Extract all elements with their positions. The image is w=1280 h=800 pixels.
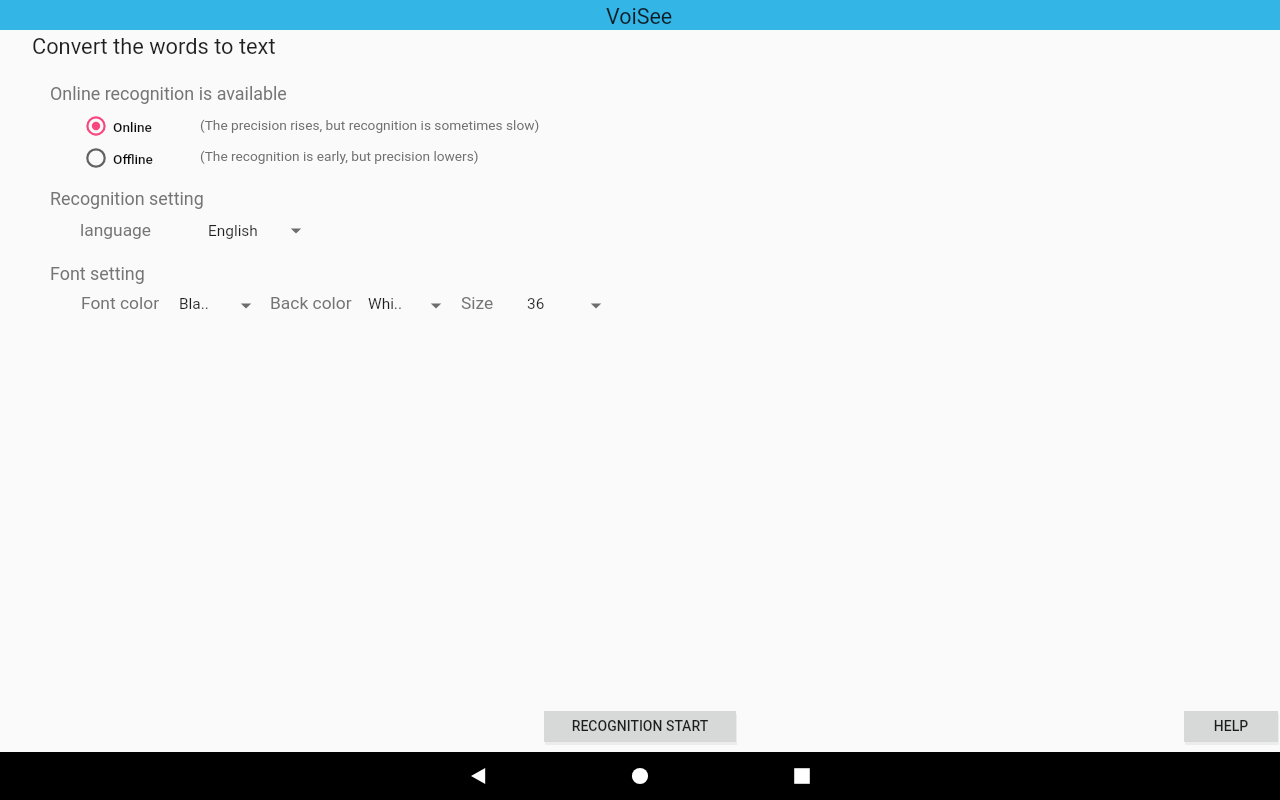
button[interactable]: Online [83,113,155,139]
staticText: Bla.. [179,295,209,313]
staticText: Offline [113,151,153,167]
staticText: 36 [527,295,545,313]
button[interactable]: Back [454,752,502,800]
staticText: Convert the words to text [32,34,276,60]
staticText: VoiSee [606,4,673,29]
button[interactable]: Select language [201,213,309,249]
staticText: Font color [81,293,160,313]
staticText: Online [113,119,152,135]
staticText: Online recognition is available [50,83,287,104]
staticText: language [80,220,152,240]
staticText: Whi.. [368,295,402,313]
staticText: (The recognition is early, but precision… [200,148,479,164]
staticText: Recognition setting [50,188,204,209]
staticText: Back color [270,293,352,313]
button[interactable]: Select font color [172,286,259,322]
button[interactable]: Select size [520,286,609,322]
staticText: (The precision rises, but recognition is… [200,117,540,133]
button[interactable]: RECOGNITION START [544,711,736,742]
staticText: HELP [1184,718,1278,734]
staticText: English [208,222,258,240]
staticText: RECOGNITION START [544,718,736,734]
button[interactable]: Home [616,752,664,800]
button[interactable]: Select back color [361,286,449,322]
staticText: Font setting [50,263,145,284]
button[interactable]: Offline [83,145,155,171]
button[interactable]: HELP [1184,711,1278,742]
button[interactable]: Recent apps [778,752,826,800]
staticText: Size [461,293,494,313]
